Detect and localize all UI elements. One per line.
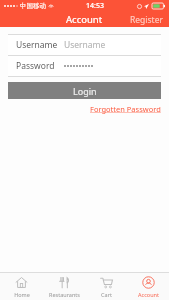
button[interactable]: Password (8, 56, 161, 76)
staticText: Register (130, 14, 163, 25)
staticText: 中国移动 (20, 2, 46, 10)
staticText: Account (138, 291, 159, 298)
button[interactable]: Account (127, 273, 169, 300)
staticText: Account (66, 13, 103, 26)
staticText: Username (16, 39, 60, 51)
button[interactable]: Login (8, 82, 161, 99)
button[interactable]: Forgotten Password (90, 103, 169, 115)
staticText: Forgotten Password (90, 104, 161, 114)
button[interactable]: Home (0, 273, 43, 300)
button[interactable]: Register (124, 12, 169, 27)
button[interactable]: Username (8, 35, 161, 55)
staticText: Password (16, 60, 60, 72)
button[interactable]: Restaurants (43, 273, 85, 300)
staticText: Home (14, 291, 30, 298)
staticText: Login (73, 85, 97, 97)
staticText: Restaurants (49, 291, 80, 298)
staticText: Cart (101, 291, 112, 298)
staticText: Username (64, 39, 106, 51)
staticText: 14:53 (86, 1, 104, 11)
button[interactable]: Cart (85, 273, 127, 300)
